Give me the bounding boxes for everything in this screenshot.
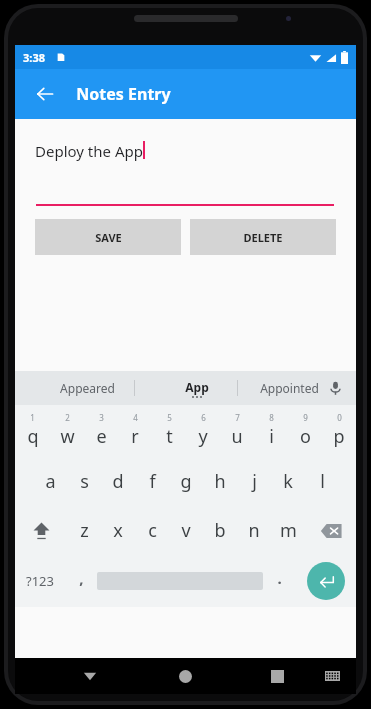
staticText: 3 bbox=[99, 412, 104, 423]
button[interactable] bbox=[97, 555, 263, 607]
staticText: 9 bbox=[303, 412, 308, 423]
button[interactable]: Backspace bbox=[305, 506, 356, 555]
button[interactable]: 9 bbox=[288, 409, 322, 457]
staticText: 4 bbox=[133, 412, 138, 423]
button[interactable]: j bbox=[237, 457, 271, 506]
staticText: q bbox=[27, 424, 39, 449]
button[interactable]: Voice input bbox=[320, 373, 350, 403]
staticText: n bbox=[248, 518, 260, 543]
button[interactable]: h bbox=[203, 457, 237, 506]
button[interactable]: Appeared bbox=[43, 371, 131, 405]
button[interactable]: a bbox=[33, 457, 67, 506]
staticText: . bbox=[277, 568, 282, 588]
staticText: l bbox=[320, 469, 325, 494]
staticText: r bbox=[131, 424, 139, 449]
button[interactable]: Appointed bbox=[247, 371, 332, 405]
staticText: y bbox=[198, 424, 208, 449]
staticText: f bbox=[149, 469, 156, 494]
staticText: e bbox=[96, 424, 107, 449]
staticText: 6 bbox=[201, 412, 206, 423]
button[interactable]: . bbox=[263, 555, 295, 607]
staticText: Deploy the App bbox=[35, 141, 143, 161]
staticText: 1 bbox=[30, 412, 35, 423]
button[interactable]: ?123 bbox=[15, 555, 65, 607]
button[interactable]: c bbox=[135, 506, 169, 555]
button[interactable]: f bbox=[135, 457, 169, 506]
button[interactable]: z bbox=[67, 506, 101, 555]
staticText: k bbox=[283, 469, 293, 494]
staticText: 3:38 bbox=[23, 50, 45, 65]
button[interactable]: DELETE bbox=[190, 219, 336, 255]
staticText: App bbox=[185, 379, 209, 395]
staticText: g bbox=[180, 469, 192, 494]
button[interactable]: 7 bbox=[220, 409, 254, 457]
button[interactable]: 8 bbox=[254, 409, 288, 457]
button[interactable]: 5 bbox=[152, 409, 186, 457]
button[interactable]: Back bbox=[27, 76, 63, 112]
button[interactable]: b bbox=[203, 506, 237, 555]
button[interactable]: d bbox=[101, 457, 135, 506]
button[interactable]: m bbox=[271, 506, 305, 555]
staticText: p bbox=[333, 424, 345, 449]
button[interactable]: v bbox=[169, 506, 203, 555]
staticText: , bbox=[79, 568, 84, 588]
button[interactable]: Home bbox=[179, 670, 192, 683]
button[interactable]: Change keyboard bbox=[321, 665, 343, 687]
button[interactable]: n bbox=[237, 506, 271, 555]
staticText: SAVE bbox=[95, 230, 122, 245]
staticText: w bbox=[60, 424, 75, 449]
staticText: u bbox=[231, 424, 243, 449]
button[interactable]: , bbox=[65, 555, 97, 607]
staticText: Appointed bbox=[260, 380, 319, 396]
staticText: h bbox=[214, 469, 226, 494]
staticText: Appeared bbox=[60, 380, 115, 396]
staticText: i bbox=[269, 424, 274, 449]
button[interactable]: k bbox=[271, 457, 305, 506]
button[interactable]: 2 bbox=[50, 409, 84, 457]
button[interactable]: Shift bbox=[15, 506, 67, 555]
staticText: x bbox=[113, 518, 123, 543]
button[interactable]: Enter bbox=[295, 555, 356, 607]
button[interactable]: 3 bbox=[84, 409, 118, 457]
staticText: j bbox=[252, 469, 257, 494]
staticText: a bbox=[45, 469, 56, 494]
button[interactable]: SAVE bbox=[35, 219, 181, 255]
button[interactable]: 6 bbox=[186, 409, 220, 457]
staticText: 2 bbox=[65, 412, 70, 423]
button[interactable]: g bbox=[169, 457, 203, 506]
button[interactable]: x bbox=[101, 506, 135, 555]
button[interactable]: s bbox=[67, 457, 101, 506]
staticText: DELETE bbox=[243, 230, 283, 245]
staticText: m bbox=[280, 518, 297, 543]
staticText: s bbox=[80, 469, 89, 494]
staticText: 0 bbox=[337, 412, 342, 423]
staticText: c bbox=[148, 518, 157, 543]
staticText: 5 bbox=[167, 412, 172, 423]
button[interactable]: 0 bbox=[322, 409, 356, 457]
staticText: Notes Entry bbox=[76, 83, 171, 105]
staticText: t bbox=[166, 424, 173, 449]
staticText: v bbox=[181, 518, 191, 543]
staticText: 7 bbox=[235, 412, 240, 423]
staticText: ?123 bbox=[26, 572, 54, 590]
staticText: z bbox=[80, 518, 89, 543]
button[interactable]: l bbox=[305, 457, 339, 506]
staticText: d bbox=[112, 469, 124, 494]
staticText: o bbox=[300, 424, 311, 449]
button[interactable]: App bbox=[160, 371, 234, 405]
button[interactable]: Back bbox=[75, 658, 371, 694]
button[interactable]: 1 bbox=[15, 409, 50, 457]
staticText: 8 bbox=[269, 412, 274, 423]
button[interactable]: 4 bbox=[118, 409, 152, 457]
staticText: b bbox=[214, 518, 226, 543]
